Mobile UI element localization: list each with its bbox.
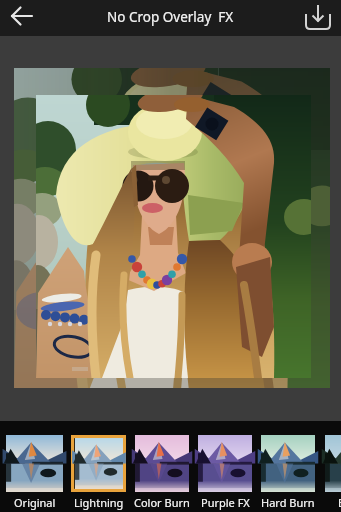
staticText: Black (338, 495, 341, 510)
staticText: Lightning (74, 495, 124, 510)
staticText: Original (14, 495, 56, 510)
button[interactable] (0, 0, 44, 36)
staticText: Color Burn (134, 495, 190, 510)
button[interactable] (325, 435, 341, 492)
staticText: No Crop Overlay FX (107, 8, 234, 26)
button[interactable] (295, 0, 341, 36)
staticText: Purple FX (201, 495, 250, 510)
button[interactable] (261, 435, 315, 492)
staticText: Hard Burn (261, 495, 315, 510)
button[interactable] (75, 438, 123, 489)
button[interactable] (135, 435, 189, 492)
button[interactable] (198, 435, 252, 492)
button[interactable] (6, 435, 63, 492)
button[interactable] (36, 95, 311, 378)
